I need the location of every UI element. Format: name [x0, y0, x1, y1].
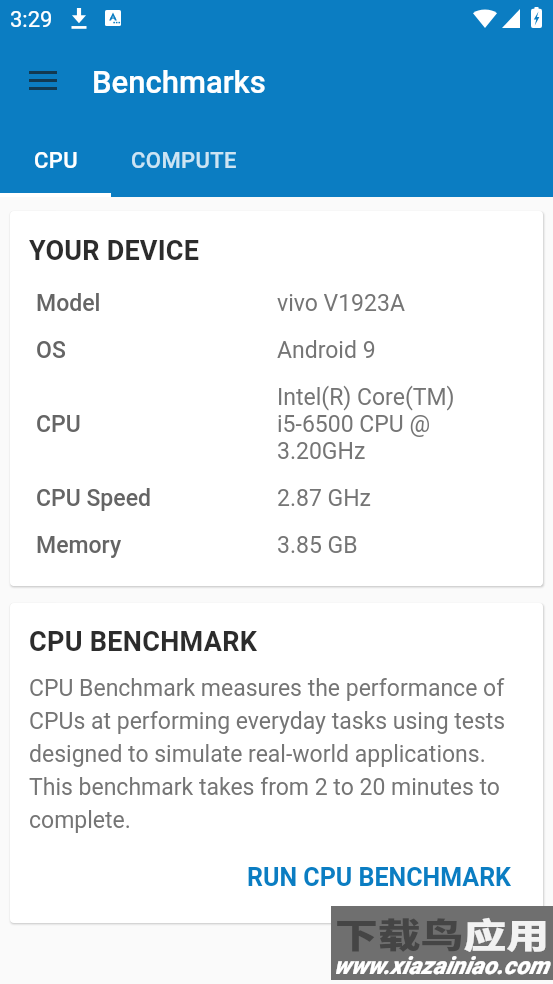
staticText: 3:29: [10, 7, 53, 33]
staticText: YOUR DEVICE: [29, 235, 200, 267]
staticText: RUN CPU BENCHMARK: [247, 863, 512, 892]
button[interactable]: CPU: [0, 125, 111, 197]
staticText: www.xiazainiao.com: [334, 952, 550, 980]
staticText: Memory: [36, 532, 277, 559]
staticText: 应用: [463, 909, 549, 958]
button[interactable]: RUN CPU BENCHMARK: [235, 853, 524, 902]
staticText: CPU: [34, 148, 78, 174]
button[interactable]: Open navigation drawer: [9, 46, 77, 114]
staticText: OS: [36, 337, 277, 364]
staticText: 2.87 GHz: [277, 485, 372, 512]
staticText: Intel(R) Core(TM) i5-6500 CPU @ 3.20GHz: [277, 384, 455, 465]
staticText: 3.85 GB: [277, 532, 358, 559]
staticText: Model: [36, 290, 277, 317]
staticText: CPU Speed: [36, 485, 277, 512]
staticText: CPU BENCHMARK: [29, 626, 258, 658]
staticText: CPU: [36, 411, 277, 438]
staticText: vivo V1923A: [277, 290, 405, 317]
staticText: COMPUTE: [131, 148, 237, 174]
button[interactable]: COMPUTE: [111, 125, 257, 197]
staticText: Benchmarks: [92, 64, 266, 100]
staticText: CPU Benchmark measures the performance o…: [29, 675, 524, 834]
staticText: 下载鸟: [335, 909, 463, 958]
staticText: Android 9: [277, 337, 376, 364]
